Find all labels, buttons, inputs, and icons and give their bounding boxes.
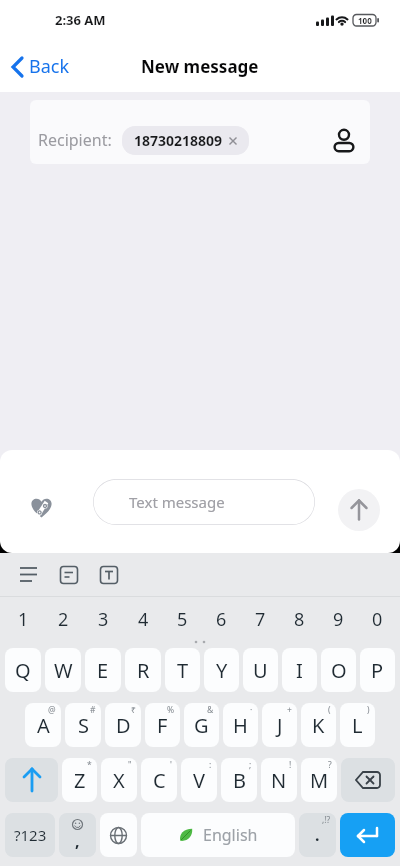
button[interactable]: ;	[221, 758, 257, 802]
staticText: M	[310, 767, 329, 794]
staticText: P	[371, 657, 384, 684]
staticText: 6	[216, 607, 227, 632]
staticText: L	[352, 712, 363, 739]
button[interactable]: +	[262, 703, 297, 747]
staticText: (	[328, 704, 331, 716]
staticText: U	[253, 657, 268, 684]
button[interactable]: 3	[83, 597, 123, 641]
staticText: *	[87, 759, 92, 771]
button[interactable]: 8	[280, 597, 319, 641]
staticText: ?123	[14, 825, 47, 845]
staticText: '	[170, 759, 172, 771]
staticText: Q	[15, 657, 31, 684]
staticText: F	[157, 712, 168, 739]
button[interactable]: *	[62, 758, 97, 802]
staticText: X	[113, 767, 125, 794]
staticText: ?	[328, 759, 332, 771]
button[interactable]: W	[45, 648, 81, 692]
staticText: K	[312, 712, 325, 739]
button[interactable]: :	[181, 758, 217, 802]
button[interactable]: 1	[3, 597, 43, 641]
button[interactable]	[100, 813, 137, 857]
button[interactable]: 9	[319, 597, 358, 641]
button[interactable]: R	[125, 648, 161, 692]
button[interactable]	[5, 758, 58, 802]
staticText: 9	[333, 607, 344, 632]
button[interactable]: Y	[204, 648, 239, 692]
button[interactable]: @	[25, 703, 61, 747]
staticText: ₹	[131, 704, 136, 716]
button[interactable]: ,	[59, 813, 96, 857]
button[interactable]: English	[141, 813, 295, 857]
button[interactable]	[332, 128, 356, 152]
staticText: "	[128, 759, 132, 771]
button[interactable]: #	[65, 703, 101, 747]
staticText: 1	[18, 607, 29, 632]
button[interactable]: (	[301, 703, 336, 747]
button[interactable]: O	[321, 648, 356, 692]
button[interactable]: )	[340, 703, 375, 747]
staticText: Recipient:	[38, 129, 112, 151]
staticText: !	[289, 759, 292, 771]
button[interactable]: ?	[301, 758, 337, 802]
button[interactable]	[338, 489, 380, 531]
button[interactable]: !	[261, 758, 297, 802]
button[interactable]: 6	[202, 597, 241, 641]
button[interactable]: 5	[163, 597, 202, 641]
staticText: English	[203, 824, 258, 846]
staticText: 2	[58, 607, 69, 632]
staticText: #	[90, 704, 96, 716]
staticText: ,!?	[322, 814, 331, 826]
button[interactable]: Q	[5, 648, 41, 692]
button[interactable]	[340, 813, 395, 857]
button[interactable]: "	[101, 758, 137, 802]
button[interactable]: 0	[358, 597, 397, 641]
staticText: 100	[358, 15, 372, 26]
button[interactable]	[60, 566, 78, 584]
staticText: )	[367, 704, 370, 716]
button[interactable]: I	[282, 648, 317, 692]
button[interactable]: Text message	[93, 479, 315, 525]
button[interactable]	[20, 566, 38, 584]
staticText: V	[193, 767, 205, 794]
staticText: O	[331, 657, 347, 684]
button[interactable]	[30, 497, 53, 520]
button[interactable]: ,!?	[299, 813, 336, 857]
button[interactable]: P	[360, 648, 395, 692]
staticText: T	[177, 657, 189, 684]
staticText: J	[277, 712, 283, 739]
staticText: C	[153, 767, 166, 794]
button[interactable]: E	[85, 648, 121, 692]
staticText: New message	[141, 55, 259, 78]
staticText: 8	[294, 607, 305, 632]
staticText: Z	[74, 767, 86, 794]
button[interactable]: Recipient:	[30, 100, 370, 164]
staticText: E	[97, 657, 109, 684]
button[interactable]: T	[165, 648, 200, 692]
button[interactable]: ₹	[105, 703, 141, 747]
button[interactable]: ·	[223, 703, 258, 747]
button[interactable]: 18730218809	[134, 131, 237, 150]
button[interactable]	[100, 566, 118, 584]
staticText: S	[78, 712, 89, 739]
button[interactable]: %	[145, 703, 180, 747]
staticText: G	[194, 712, 209, 739]
button[interactable]: U	[243, 648, 278, 692]
staticText: .	[315, 824, 320, 846]
button[interactable]: '	[141, 758, 177, 802]
button[interactable]: &	[184, 703, 219, 747]
staticText: A	[37, 712, 50, 739]
staticText: 7	[255, 607, 266, 632]
staticText: N	[271, 767, 287, 794]
button[interactable]: 7	[241, 597, 280, 641]
button[interactable]: 4	[123, 597, 163, 641]
button[interactable]: 2	[43, 597, 83, 641]
staticText: :	[209, 759, 212, 771]
button[interactable]: ?123	[5, 813, 55, 857]
button[interactable]: Back	[10, 54, 70, 79]
staticText: 18730218809	[134, 131, 223, 150]
button[interactable]	[341, 758, 395, 802]
staticText: H	[233, 712, 248, 739]
staticText: I	[296, 657, 303, 684]
staticText: ·	[250, 704, 253, 716]
